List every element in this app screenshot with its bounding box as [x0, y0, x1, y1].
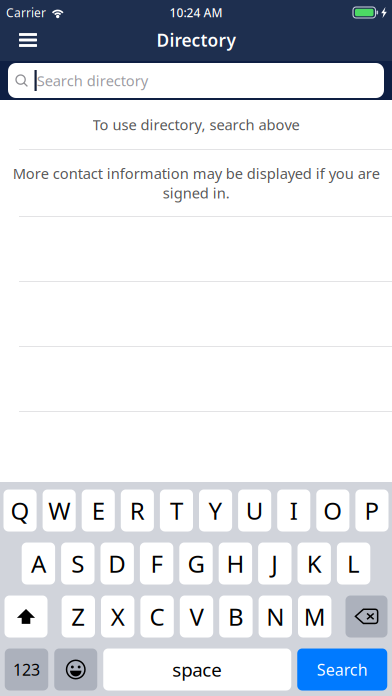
button[interactable]: R: [121, 489, 154, 531]
staticText: R: [130, 495, 145, 526]
button[interactable]: Delete: [345, 595, 387, 637]
staticText: S: [71, 548, 84, 579]
staticText: T: [170, 495, 183, 526]
button[interactable]: A: [22, 542, 55, 584]
staticText: Search: [317, 659, 368, 680]
button[interactable]: M: [298, 595, 331, 637]
staticText: W: [48, 495, 70, 526]
staticText: space: [172, 657, 222, 682]
staticText: Search directory: [37, 71, 148, 90]
button[interactable]: J: [258, 542, 291, 584]
staticText: K: [307, 548, 322, 579]
button[interactable]: N: [259, 595, 292, 637]
button[interactable]: space: [103, 648, 291, 690]
button[interactable]: B: [219, 595, 253, 637]
staticText: E: [92, 495, 105, 526]
button[interactable]: T: [160, 489, 193, 531]
button[interactable]: Shift: [4, 595, 47, 637]
staticText: G: [187, 548, 204, 579]
staticText: L: [347, 548, 360, 579]
staticText: D: [108, 548, 126, 579]
button[interactable]: D: [100, 542, 134, 584]
staticText: M: [304, 601, 326, 632]
staticText: P: [364, 495, 379, 526]
button[interactable]: Z: [62, 595, 95, 637]
staticText: Carrier: [6, 4, 46, 20]
button[interactable]: F: [140, 542, 173, 584]
staticText: Directory: [156, 28, 235, 51]
button[interactable]: G: [179, 542, 213, 584]
button[interactable]: O: [316, 489, 349, 531]
button[interactable]: Q: [3, 489, 37, 531]
button[interactable]: S: [61, 542, 94, 584]
button[interactable]: P: [355, 489, 388, 531]
staticText: Z: [71, 601, 85, 632]
staticText: O: [323, 495, 342, 526]
button[interactable]: Menu: [0, 25, 56, 61]
button[interactable]: U: [238, 489, 271, 531]
staticText: N: [266, 601, 284, 632]
staticText: 10:24 AM: [169, 4, 222, 20]
staticText: Y: [208, 495, 222, 526]
staticText: U: [246, 495, 264, 526]
button[interactable]: W: [43, 489, 76, 531]
button[interactable]: Y: [199, 489, 232, 531]
staticText: C: [150, 601, 165, 632]
staticText: V: [189, 601, 203, 632]
button[interactable]: X: [101, 595, 134, 637]
staticText: X: [111, 601, 125, 632]
staticText: 123: [13, 659, 40, 680]
staticText: J: [271, 548, 278, 579]
staticText: I: [290, 495, 298, 526]
button[interactable]: H: [219, 542, 252, 584]
button[interactable]: K: [297, 542, 331, 584]
staticText: F: [151, 548, 163, 579]
button[interactable]: Emoji: [54, 648, 97, 690]
button[interactable]: Search: [297, 648, 387, 690]
staticText: A: [31, 548, 46, 579]
staticText: H: [226, 548, 244, 579]
button[interactable]: E: [82, 489, 115, 531]
staticText: To use directory, search above: [92, 115, 299, 134]
button[interactable]: C: [140, 595, 174, 637]
staticText: Q: [10, 495, 29, 526]
button[interactable]: L: [337, 542, 370, 584]
staticText: B: [228, 601, 244, 632]
staticText: More contact information may be displaye…: [12, 163, 379, 202]
button[interactable]: V: [180, 595, 213, 637]
button[interactable]: 123: [5, 648, 48, 690]
button[interactable]: I: [277, 489, 310, 531]
